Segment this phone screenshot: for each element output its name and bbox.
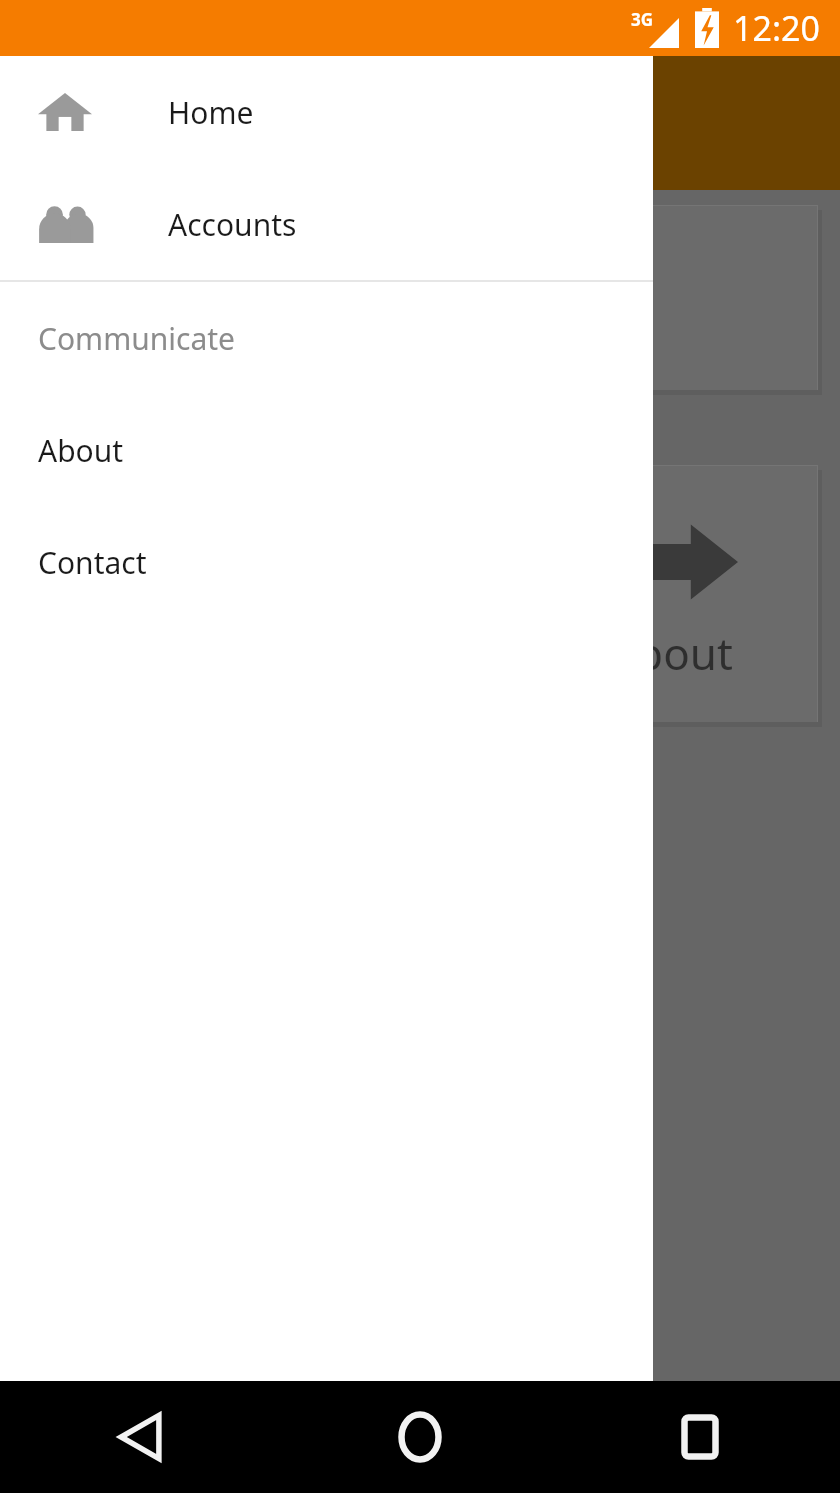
staticText: Accounts <box>168 204 297 245</box>
button[interactable]: Accounts <box>0 168 653 280</box>
staticText: 12:20 <box>733 5 820 51</box>
button[interactable]: Home <box>355 1381 485 1493</box>
button[interactable]: Home <box>0 56 653 168</box>
staticText: About <box>38 430 124 471</box>
button[interactable]: Recent apps <box>635 1381 765 1493</box>
staticText: Communicate <box>38 318 236 359</box>
staticText: Contact <box>38 542 147 583</box>
staticText: Home <box>168 92 254 133</box>
button[interactable]: Contact <box>0 506 653 618</box>
staticText: About <box>608 623 733 683</box>
button[interactable]: Back <box>75 1381 205 1493</box>
staticText: 3G <box>631 8 654 31</box>
button[interactable]: About <box>0 394 653 506</box>
